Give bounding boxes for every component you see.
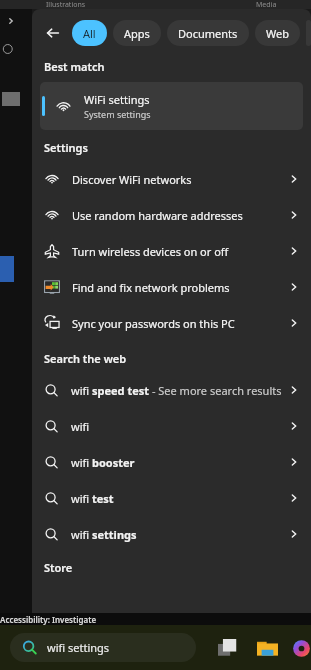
button[interactable]: wifi settings	[10, 633, 196, 662]
staticText: Discover WiFi networks	[72, 172, 287, 187]
staticText: wifi settings	[47, 640, 110, 655]
staticText: wifi settings	[71, 527, 287, 542]
staticText: wifi speed test - See more search result…	[71, 383, 287, 398]
button[interactable]: Documents	[167, 20, 249, 46]
staticText: Documents	[178, 26, 238, 41]
staticText: wifi test	[71, 491, 287, 506]
button[interactable]: All	[72, 20, 107, 46]
staticText: Find and fix network problems	[72, 280, 287, 295]
staticText: Accessibility: Investigate	[0, 614, 97, 625]
button[interactable]: wifi speed test - See more search result…	[32, 372, 311, 408]
button[interactable]: wifi	[32, 408, 311, 444]
staticText: Media	[256, 0, 277, 9]
staticText: Sync your passwords on this PC	[72, 316, 287, 331]
staticText: Settings	[44, 140, 88, 155]
button[interactable]: wifi test	[32, 480, 311, 516]
button[interactable]: Task view	[212, 633, 242, 663]
button[interactable]: Find and fix network problems	[32, 269, 311, 305]
button[interactable]: wifi booster	[32, 444, 311, 480]
button[interactable]: WiFi settings	[40, 82, 303, 130]
staticText: Illustrations	[46, 0, 86, 9]
staticText: Use random hardware addresses	[72, 208, 287, 223]
button[interactable]: Turn wireless devices on or off	[32, 233, 311, 269]
staticText: Web	[266, 26, 289, 41]
button[interactable]: Back	[40, 20, 66, 46]
button[interactable]: Discover WiFi networks	[32, 161, 311, 197]
button[interactable]: Sync your passwords on this PC	[32, 305, 311, 341]
staticText: System settings	[84, 108, 151, 120]
button[interactable]: wifi settings	[32, 516, 311, 552]
staticText: Best match	[44, 59, 105, 74]
button[interactable]: Copilot	[292, 633, 311, 663]
button[interactable]: File Explorer	[252, 633, 282, 663]
other: Expand	[4, 14, 18, 28]
staticText: wifi booster	[71, 455, 287, 470]
button[interactable]: Use random hardware addresses	[32, 197, 311, 233]
staticText: Search the web	[44, 351, 127, 366]
staticText: wifi	[71, 419, 287, 434]
staticText: Apps	[124, 26, 150, 41]
button[interactable]: Apps	[113, 20, 161, 46]
staticText: Store	[44, 560, 73, 575]
staticText: Turn wireless devices on or off	[72, 244, 287, 259]
button[interactable]: Web	[255, 20, 300, 46]
staticText: All	[83, 26, 96, 41]
staticText: WiFi settings	[84, 92, 150, 107]
